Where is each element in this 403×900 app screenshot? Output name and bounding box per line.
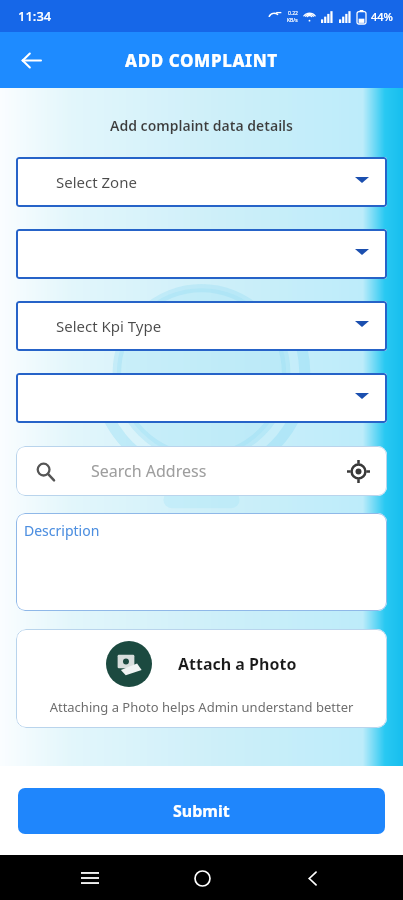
button[interactable]: Use current location <box>343 456 373 486</box>
staticText: Submit <box>173 800 230 822</box>
button[interactable]: Submit <box>18 788 385 834</box>
staticText: 11:34 <box>18 7 52 25</box>
button[interactable] <box>16 229 387 279</box>
staticText: Description <box>24 521 100 540</box>
staticText: Attaching a Photo helps Admin understand… <box>16 698 387 716</box>
staticText: Attach a Photo <box>178 653 297 675</box>
staticText: Select Kpi Type <box>56 316 162 336</box>
button[interactable]: Home <box>180 856 224 900</box>
button[interactable]: Recent apps <box>68 856 112 900</box>
staticText: Select Zone <box>56 172 137 192</box>
button[interactable]: Description <box>16 513 387 611</box>
button[interactable]: Back <box>291 856 335 900</box>
button[interactable]: Select Kpi Type <box>16 301 387 351</box>
button[interactable]: Select Zone <box>16 157 387 207</box>
button[interactable] <box>16 373 387 423</box>
staticText: 44% <box>371 9 393 24</box>
staticText: Search Address <box>91 460 207 482</box>
staticText: 0.22 <box>288 10 298 17</box>
button[interactable]: Search Address <box>16 446 387 496</box>
button[interactable]: Back <box>10 39 52 81</box>
button[interactable]: Attach a Photo <box>16 629 387 728</box>
staticText: ADD COMPLAINT <box>125 49 278 72</box>
staticText: Add complaint data details <box>16 116 387 135</box>
staticText: KB/s <box>287 17 298 24</box>
